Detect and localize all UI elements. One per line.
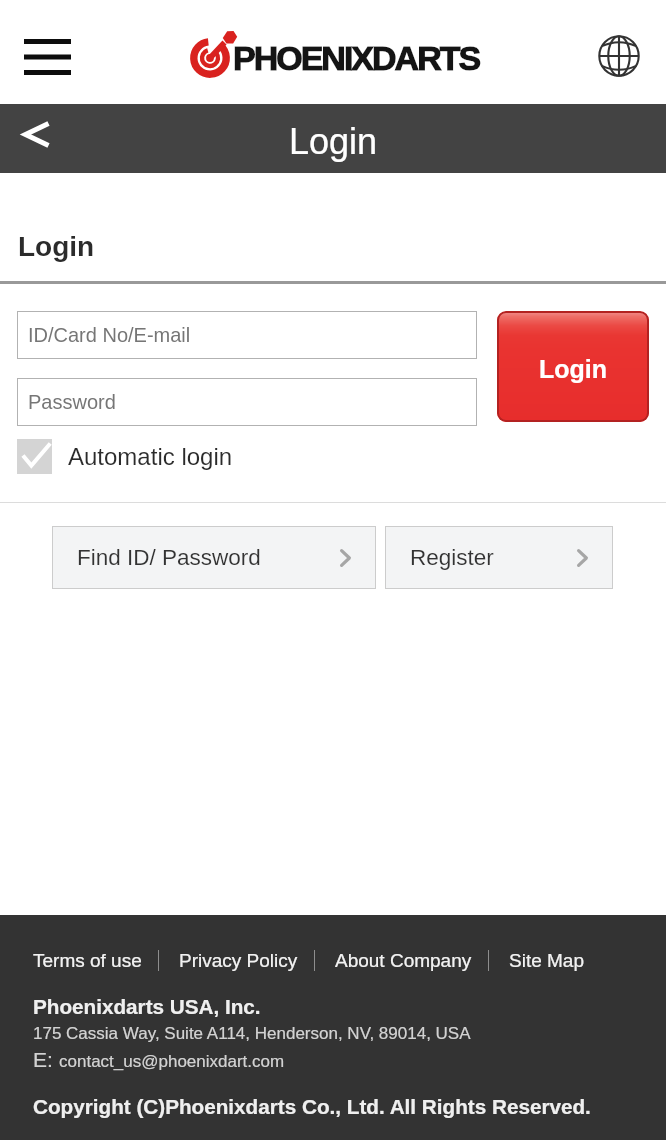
staticText: Terms of use bbox=[33, 950, 142, 971]
button[interactable]: Register bbox=[385, 526, 613, 589]
button[interactable]: Privacy Policy bbox=[179, 950, 298, 971]
staticText: Phoenixdarts USA, Inc. bbox=[33, 995, 261, 1018]
button[interactable]: Find ID/ Password bbox=[52, 526, 376, 589]
staticText: Login bbox=[539, 355, 608, 383]
staticText: ID/Card No/E-mail bbox=[28, 324, 191, 346]
button[interactable]: Menu bbox=[0, 17, 94, 95]
button[interactable]: Login bbox=[497, 311, 649, 422]
staticText: Automatic login bbox=[68, 443, 233, 470]
staticText: Find ID/ Password bbox=[77, 545, 261, 570]
staticText: Login bbox=[289, 121, 378, 161]
button[interactable]: Back bbox=[0, 104, 70, 173]
staticText: PHOENIXDARTS bbox=[233, 39, 480, 77]
button[interactable]: Site Map bbox=[509, 950, 584, 971]
button[interactable]: Language bbox=[585, 17, 653, 95]
button[interactable]: About Company bbox=[335, 950, 472, 971]
staticText: Copyright (C)Phoenixdarts Co., Ltd. All … bbox=[33, 1095, 591, 1118]
staticText: Login bbox=[18, 231, 95, 262]
button[interactable]: Automatic login bbox=[17, 439, 233, 474]
button[interactable]: Password bbox=[17, 378, 477, 426]
staticText: Privacy Policy bbox=[179, 950, 298, 971]
staticText: Register bbox=[410, 545, 494, 570]
staticText: contact_us@phoenixdart.com bbox=[59, 1052, 285, 1071]
staticText: Password bbox=[28, 391, 116, 413]
staticText: 175 Cassia Way, Suite A114, Henderson, N… bbox=[33, 1024, 471, 1043]
staticText: Site Map bbox=[509, 950, 584, 971]
button[interactable]: ID/Card No/E-mail bbox=[17, 311, 477, 359]
staticText: About Company bbox=[335, 950, 472, 971]
button[interactable]: Terms of use bbox=[33, 950, 142, 971]
staticText: E: bbox=[33, 1048, 59, 1071]
